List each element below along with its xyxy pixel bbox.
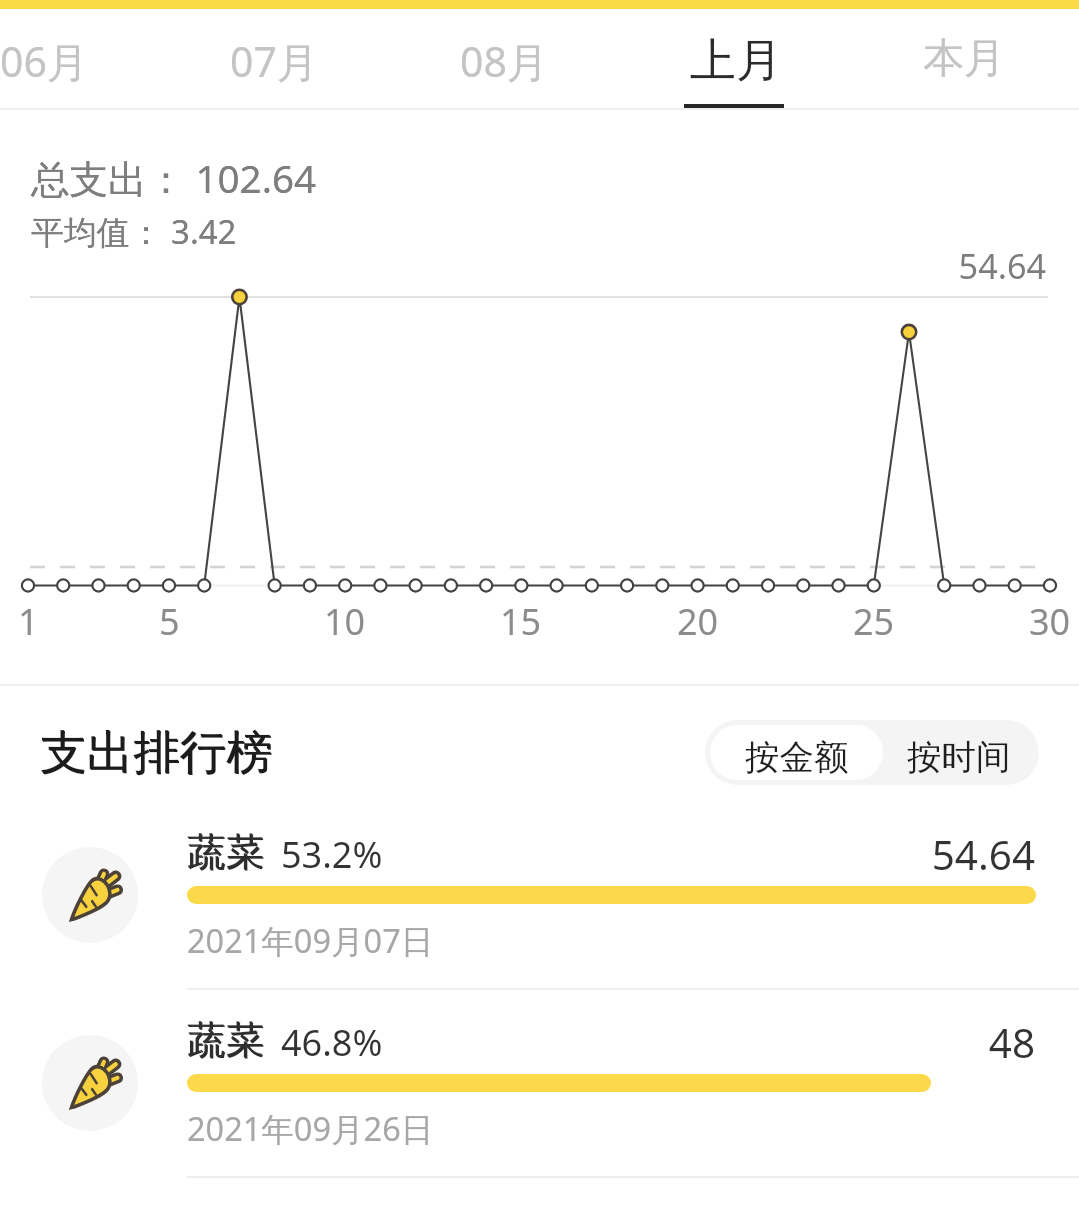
staticText: 1 (18, 597, 39, 646)
button[interactable]: 上月 (619, 9, 849, 109)
staticText: 06月 (0, 33, 88, 89)
staticText: 上月 (690, 32, 782, 90)
staticText: 总支出： 102.64 (31, 152, 317, 205)
button[interactable]: 蔬菜分类 (0, 793, 1079, 985)
staticText: 蔬菜 (188, 829, 265, 878)
staticText: 20 (677, 597, 719, 646)
staticText: 支出排行榜 (40, 723, 273, 782)
staticText: 25 (853, 597, 895, 646)
staticText: 按金额 (745, 736, 849, 779)
staticText: 蔬菜 (187, 1016, 264, 1065)
button[interactable]: 08月 (389, 9, 619, 109)
staticText: 07月 (230, 33, 318, 89)
staticText: 蔬菜 (188, 1017, 265, 1066)
staticText: 48 (0, 1015, 1035, 1070)
button[interactable]: 06月 (0, 9, 159, 109)
button[interactable]: 蔬菜分类 (0, 981, 1079, 1173)
staticText: 按时间 (907, 736, 1011, 779)
staticText: 本月 (923, 33, 1005, 85)
other: 蔬菜分类 (42, 1035, 138, 1131)
staticText: 08月 (460, 33, 548, 89)
staticText: 平均值： 3.42 (31, 209, 237, 254)
staticText: 46.8% (281, 1018, 383, 1067)
staticText: 平均值： 3.42 (31, 209, 237, 254)
staticText: 支出排行榜 (41, 724, 274, 783)
staticText: 30 (1029, 597, 1071, 646)
staticText: 54.64 (0, 242, 1046, 289)
staticText: 蔬菜 (187, 828, 264, 877)
staticText: 53.2% (281, 830, 383, 879)
other: 蔬菜分类 (42, 847, 138, 943)
staticText: 15 (500, 597, 542, 646)
button[interactable]: 07月 (159, 9, 389, 109)
staticText: 5 (159, 597, 180, 646)
button[interactable]: 本月 (849, 9, 1079, 109)
staticText: 2021年09月07日 (187, 918, 434, 962)
staticText: 总支出： 102.64 (31, 152, 317, 205)
button[interactable]: 按金额 (710, 725, 883, 780)
button[interactable]: 按时间 (883, 725, 1034, 780)
staticText: 10 (324, 597, 366, 646)
staticText: 2021年09月26日 (187, 1106, 434, 1150)
staticText: 54.64 (0, 827, 1035, 882)
